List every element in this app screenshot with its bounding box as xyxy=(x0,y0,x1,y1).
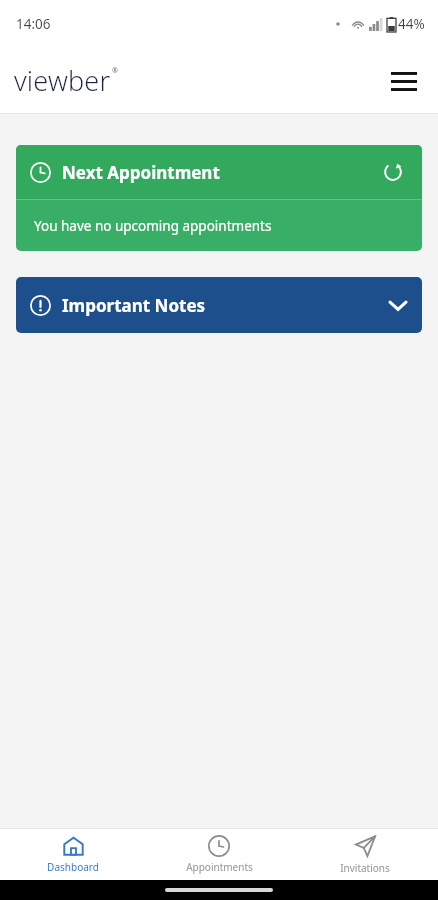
staticText: 14:06 xyxy=(16,15,51,33)
staticText: Appointments xyxy=(186,860,253,874)
button[interactable]: Refresh next appointment xyxy=(376,155,410,189)
button[interactable]: Important Notes xyxy=(16,277,422,333)
button[interactable]: Dashboard xyxy=(0,829,146,880)
staticText: Important Notes xyxy=(62,294,206,317)
button[interactable]: Next Appointment xyxy=(16,145,422,199)
button[interactable]: Invitations xyxy=(292,829,438,880)
button[interactable]: Open navigation menu xyxy=(380,57,428,105)
staticText: 44% xyxy=(398,15,425,33)
staticText: Dashboard xyxy=(47,860,99,874)
staticText: Invitations xyxy=(340,861,390,875)
button[interactable]: You have no upcoming appointments xyxy=(16,200,422,251)
staticText: Next Appointment xyxy=(62,161,220,184)
button[interactable]: Appointments xyxy=(146,829,292,880)
staticText: You have no upcoming appointments xyxy=(34,217,272,235)
staticText: ® xyxy=(112,66,118,76)
staticText: viewber xyxy=(14,62,111,99)
